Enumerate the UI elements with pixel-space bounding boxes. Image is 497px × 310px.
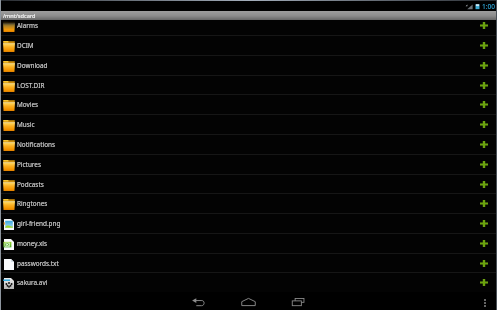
button[interactable]: Ringtones xyxy=(0,194,497,213)
button[interactable]: Movies xyxy=(0,95,497,114)
button[interactable]: Recent apps xyxy=(286,294,311,309)
button[interactable]: Back xyxy=(186,294,211,309)
staticText: DCIM xyxy=(17,41,34,50)
button[interactable]: Add passwords.txt xyxy=(472,254,496,273)
staticText: Download xyxy=(17,61,48,70)
button[interactable]: Add Music xyxy=(472,115,496,134)
button[interactable]: Add LOST.DIR xyxy=(472,76,496,95)
button[interactable]: passwords.txt xyxy=(0,254,497,273)
button[interactable]: Add Download xyxy=(472,56,496,75)
staticText: money.xls xyxy=(17,239,48,248)
button[interactable]: DCIM xyxy=(0,36,497,55)
staticText: Movies xyxy=(17,100,39,109)
button[interactable]: girl-friend.png xyxy=(0,214,497,233)
staticText: Ringtones xyxy=(17,199,48,208)
button[interactable]: Alarms xyxy=(0,16,497,35)
button[interactable]: Add Notifications xyxy=(472,135,496,154)
button[interactable]: Home xyxy=(236,294,261,309)
staticText: sakura.avi xyxy=(17,278,48,287)
staticText: Music xyxy=(17,120,35,129)
button[interactable]: More options xyxy=(478,296,492,310)
button[interactable]: Add Podcasts xyxy=(472,175,496,194)
button[interactable]: LOST.DIR xyxy=(0,76,497,95)
button[interactable]: Add Alarms xyxy=(472,16,496,35)
button[interactable]: Music xyxy=(0,115,497,134)
button[interactable]: Add DCIM xyxy=(472,36,496,55)
staticText: Alarms xyxy=(17,21,38,30)
button[interactable]: Add girl-friend.png xyxy=(472,214,496,233)
button[interactable]: Add Movies xyxy=(472,95,496,114)
staticText: girl-friend.png xyxy=(17,219,61,228)
staticText: /mnt/sdcard xyxy=(3,12,36,20)
button[interactable]: Pictures xyxy=(0,155,497,174)
button[interactable]: /mnt/sdcard xyxy=(0,11,497,20)
button[interactable]: Podcasts xyxy=(0,175,497,194)
button[interactable]: Add sakura.avi xyxy=(472,273,496,292)
staticText: Notifications xyxy=(17,140,56,149)
button[interactable]: money.xls xyxy=(0,234,497,253)
staticText: LOST.DIR xyxy=(17,81,45,90)
staticText: Pictures xyxy=(17,160,42,169)
button[interactable]: Add Pictures xyxy=(472,155,496,174)
staticText: Podcasts xyxy=(17,180,44,189)
button[interactable]: Add Ringtones xyxy=(472,194,496,213)
staticText: 1:00 xyxy=(482,2,496,11)
button[interactable]: Notifications xyxy=(0,135,497,154)
staticText: passwords.txt xyxy=(17,259,59,268)
button[interactable]: sakura.avi xyxy=(0,273,497,292)
button[interactable]: Add money.xls xyxy=(472,234,496,253)
button[interactable]: Download xyxy=(0,56,497,75)
